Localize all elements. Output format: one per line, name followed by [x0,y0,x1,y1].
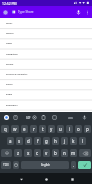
button[interactable]: u [57,125,64,133]
staticText: a [9,138,12,144]
staticText: ?123 [3,163,9,167]
button[interactable]: Search [64,112,76,123]
button[interactable]: k [70,137,77,145]
button[interactable]: Enter [78,161,91,169]
button[interactable]: Reminders [0,100,92,110]
staticText: Type Share [18,10,34,14]
staticText: Reminders [6,104,18,107]
staticText: o [77,126,80,132]
button[interactable]: Account [2,9,9,16]
button[interactable]: Clipboard [40,112,47,123]
staticText: k [72,138,75,144]
staticText: x [27,150,30,156]
button[interactable]: English [21,161,69,169]
staticText: q [4,126,7,132]
button[interactable]: Recent apps [67,174,77,184]
button[interactable]: z [14,149,22,157]
staticText: h [54,138,57,144]
button[interactable]: Backspace [79,149,91,157]
staticText: u [59,126,62,132]
staticText: Music [6,22,13,25]
staticText: w [13,126,17,132]
button[interactable]: d [25,137,32,145]
staticText: Places [6,83,13,86]
button[interactable]: t [39,125,46,133]
button[interactable]: Close keyboard [16,174,26,184]
button[interactable]: v [43,149,50,157]
button[interactable]: h [52,137,59,145]
button[interactable]: w [11,125,19,133]
staticText: Radio [6,93,13,96]
button[interactable]: o [75,125,82,133]
staticText: p [86,126,89,132]
staticText: 12:52 PM [2,1,17,6]
button[interactable]: b [52,149,59,157]
button[interactable]: ?123 [1,161,11,169]
button[interactable]: f [34,137,41,145]
staticText: e [23,126,26,132]
button[interactable]: Voice input [81,112,88,123]
button[interactable]: x [24,149,32,157]
button[interactable]: News [0,38,92,48]
button[interactable]: GIF [24,112,32,123]
button[interactable]: g [43,137,50,145]
staticText: y [50,126,53,132]
button[interactable]: q [1,125,9,133]
staticText: m [71,150,76,156]
button[interactable]: Physics & Chemistry [0,69,92,79]
button[interactable]: j [61,137,68,145]
staticText: Movies [6,32,14,35]
staticText: Physics & Chemistry [6,73,28,76]
button[interactable]: e [21,125,28,133]
staticText: z [17,150,20,156]
button[interactable]: Navigation [0,49,92,59]
button[interactable]: y [48,125,55,133]
button[interactable]: a [7,137,14,145]
staticText: v [45,150,48,156]
staticText: i [69,126,71,132]
button[interactable]: Settings [31,112,38,123]
button[interactable]: p [84,125,91,133]
staticText: l [82,138,84,144]
button[interactable]: Target Name [0,110,92,112]
button[interactable]: . [71,161,76,169]
button[interactable]: Type Share [18,10,74,14]
button[interactable]: l [79,137,86,145]
button[interactable]: Home [41,174,51,184]
button[interactable]: Movies [0,28,92,38]
staticText: . [73,162,75,168]
staticText: English [41,163,50,167]
button[interactable]: Stickers [12,112,19,123]
button[interactable]: s [16,137,23,145]
button[interactable]: n [61,149,68,157]
button[interactable]: Voice search [74,8,83,17]
button[interactable]: Music [0,18,92,28]
staticText: g [45,138,48,144]
staticText: c [36,150,39,156]
staticText: t [42,126,44,132]
button[interactable]: i [66,125,73,133]
button[interactable]: m [70,149,77,157]
button[interactable]: Emoji [13,161,19,169]
staticText: s [18,138,21,144]
staticText: j [64,138,66,144]
staticText: People [6,63,14,66]
staticText: d [27,138,30,144]
button[interactable]: r [30,125,37,133]
button[interactable]: People [0,59,92,69]
staticText: r [33,126,35,132]
button[interactable]: Shift [1,149,12,157]
button[interactable]: c [34,149,41,157]
button[interactable]: Themes [51,112,58,123]
staticText: n [63,150,66,156]
staticText: News [6,42,12,45]
staticText: Navigation [6,53,18,56]
staticText: f [37,138,39,144]
staticText: b [54,150,57,156]
button[interactable]: Radio [0,89,92,99]
button[interactable]: Places [0,79,92,89]
button[interactable]: More options [83,8,91,16]
button[interactable]: Google [3,112,10,123]
staticText: GIF [26,116,31,120]
